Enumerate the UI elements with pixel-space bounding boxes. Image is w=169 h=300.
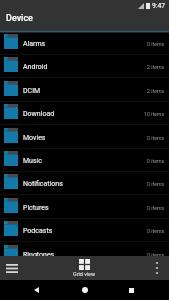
staticText: 0 items <box>147 205 165 211</box>
button[interactable]: Download <box>0 100 169 123</box>
button[interactable]: Ringtones <box>0 241 169 256</box>
button[interactable]: Notifications <box>0 170 169 193</box>
staticText: 10 items <box>144 111 165 117</box>
staticText: 2 items <box>147 64 165 70</box>
staticText: Pictures <box>23 204 49 212</box>
staticText: DCIM <box>23 87 41 95</box>
button[interactable]: DCIM <box>0 77 169 100</box>
button[interactable]: Recents <box>121 280 141 300</box>
button[interactable]: Grid view <box>68 258 101 278</box>
button[interactable]: Back <box>26 280 46 300</box>
button[interactable]: Movies <box>0 124 169 147</box>
button[interactable]: More options <box>145 256 169 280</box>
staticText: 0 items <box>147 228 165 234</box>
staticText: 0 items <box>147 181 165 187</box>
staticText: Android <box>23 63 48 71</box>
staticText: 2 items <box>147 88 165 94</box>
button[interactable]: Home <box>75 280 95 300</box>
staticText: 0 items <box>147 158 165 164</box>
staticText: 0 items <box>147 41 165 47</box>
button[interactable]: Pictures <box>0 194 169 217</box>
staticText: Download <box>23 110 55 118</box>
staticText: Music <box>23 157 42 165</box>
button[interactable]: Podcasts <box>0 217 169 240</box>
staticText: 0 items <box>147 252 165 256</box>
button[interactable]: Music <box>0 147 169 170</box>
staticText: Alarms <box>23 40 46 48</box>
staticText: Podcasts <box>23 227 53 235</box>
staticText: 9:47 <box>152 2 166 10</box>
staticText: Ringtones <box>23 251 55 256</box>
staticText: 0 items <box>147 135 165 141</box>
staticText: Notifications <box>23 180 63 188</box>
staticText: Movies <box>23 134 46 142</box>
button[interactable]: Menu <box>0 256 24 280</box>
button[interactable]: Alarms <box>0 30 169 53</box>
staticText: Grid view <box>73 271 96 277</box>
button[interactable]: Android <box>0 53 169 76</box>
staticText: Device <box>6 13 33 24</box>
